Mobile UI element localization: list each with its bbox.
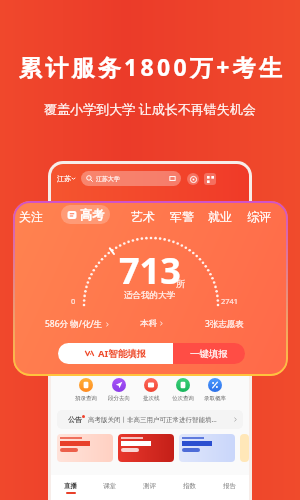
staticText: 覆盖小学到大学 让成长不再错失机会	[0, 100, 300, 118]
staticText: 本科	[140, 318, 157, 329]
button[interactable]: 就业	[208, 209, 232, 224]
button[interactable]: 艺术	[131, 209, 155, 224]
button[interactable]: 段分去向	[102, 378, 135, 402]
staticText: 3张志愿表	[205, 318, 244, 330]
staticText: 713	[119, 246, 181, 295]
staticText: 指数	[183, 482, 196, 490]
staticText: 一键填报	[190, 348, 228, 360]
staticText: 直播	[64, 482, 77, 490]
button[interactable]: 指数	[169, 475, 209, 500]
staticText: 招录查询	[75, 395, 97, 402]
button[interactable]: 军警	[170, 209, 194, 224]
staticText: 2741	[221, 296, 239, 306]
staticText: 报告	[223, 482, 236, 490]
button[interactable]: 录取概率	[199, 378, 231, 402]
button[interactable]: Scan	[204, 173, 216, 185]
button[interactable]: 综评	[247, 209, 271, 224]
staticText: 江苏大学	[96, 175, 120, 183]
button[interactable]: 高考	[67, 205, 104, 224]
staticText: 累计服务1800万+考生	[2, 51, 300, 82]
button[interactable]: 3张志愿表	[205, 318, 244, 330]
button[interactable]: 本科	[140, 318, 164, 329]
button[interactable]: 江苏大学	[86, 171, 176, 186]
staticText: 课堂	[103, 482, 116, 490]
button[interactable]: 关注	[19, 209, 43, 224]
button[interactable]: 测评	[129, 475, 169, 500]
staticText: AI智能填报	[98, 347, 147, 360]
button[interactable]: 586分 物/化/生	[45, 318, 110, 330]
button[interactable]: 一键填报	[173, 343, 245, 364]
button[interactable]: 位次查询	[167, 378, 199, 402]
button[interactable]	[118, 434, 174, 462]
staticText: 高考版关闭丨非高三用户可正常进行智能填...	[88, 415, 217, 424]
staticText: 适合我的大学	[124, 290, 175, 301]
button[interactable]: 招录查询	[69, 378, 102, 402]
button[interactable]: AI智能填报	[58, 343, 173, 364]
button[interactable]: 公告	[68, 410, 238, 429]
button[interactable]: 批次线	[135, 378, 167, 402]
staticText: 批次线	[143, 395, 160, 402]
button[interactable]: 直播	[51, 475, 90, 500]
button[interactable]: 报告	[209, 475, 249, 500]
staticText: 公告	[68, 415, 82, 424]
staticText: 段分去向	[108, 395, 130, 402]
staticText: 位次查询	[172, 395, 194, 402]
staticText: 586分 物/化/生	[45, 318, 103, 330]
staticText: 江苏	[57, 174, 71, 183]
button[interactable]: Add	[187, 173, 199, 185]
staticText: 录取概率	[204, 395, 226, 402]
staticText: 高考	[80, 207, 104, 222]
staticText: 所	[176, 278, 185, 289]
button[interactable]: 课堂	[90, 475, 129, 500]
staticText: 0	[71, 296, 76, 306]
button[interactable]	[57, 434, 113, 462]
staticText: 测评	[143, 482, 156, 490]
button[interactable]	[179, 434, 235, 462]
